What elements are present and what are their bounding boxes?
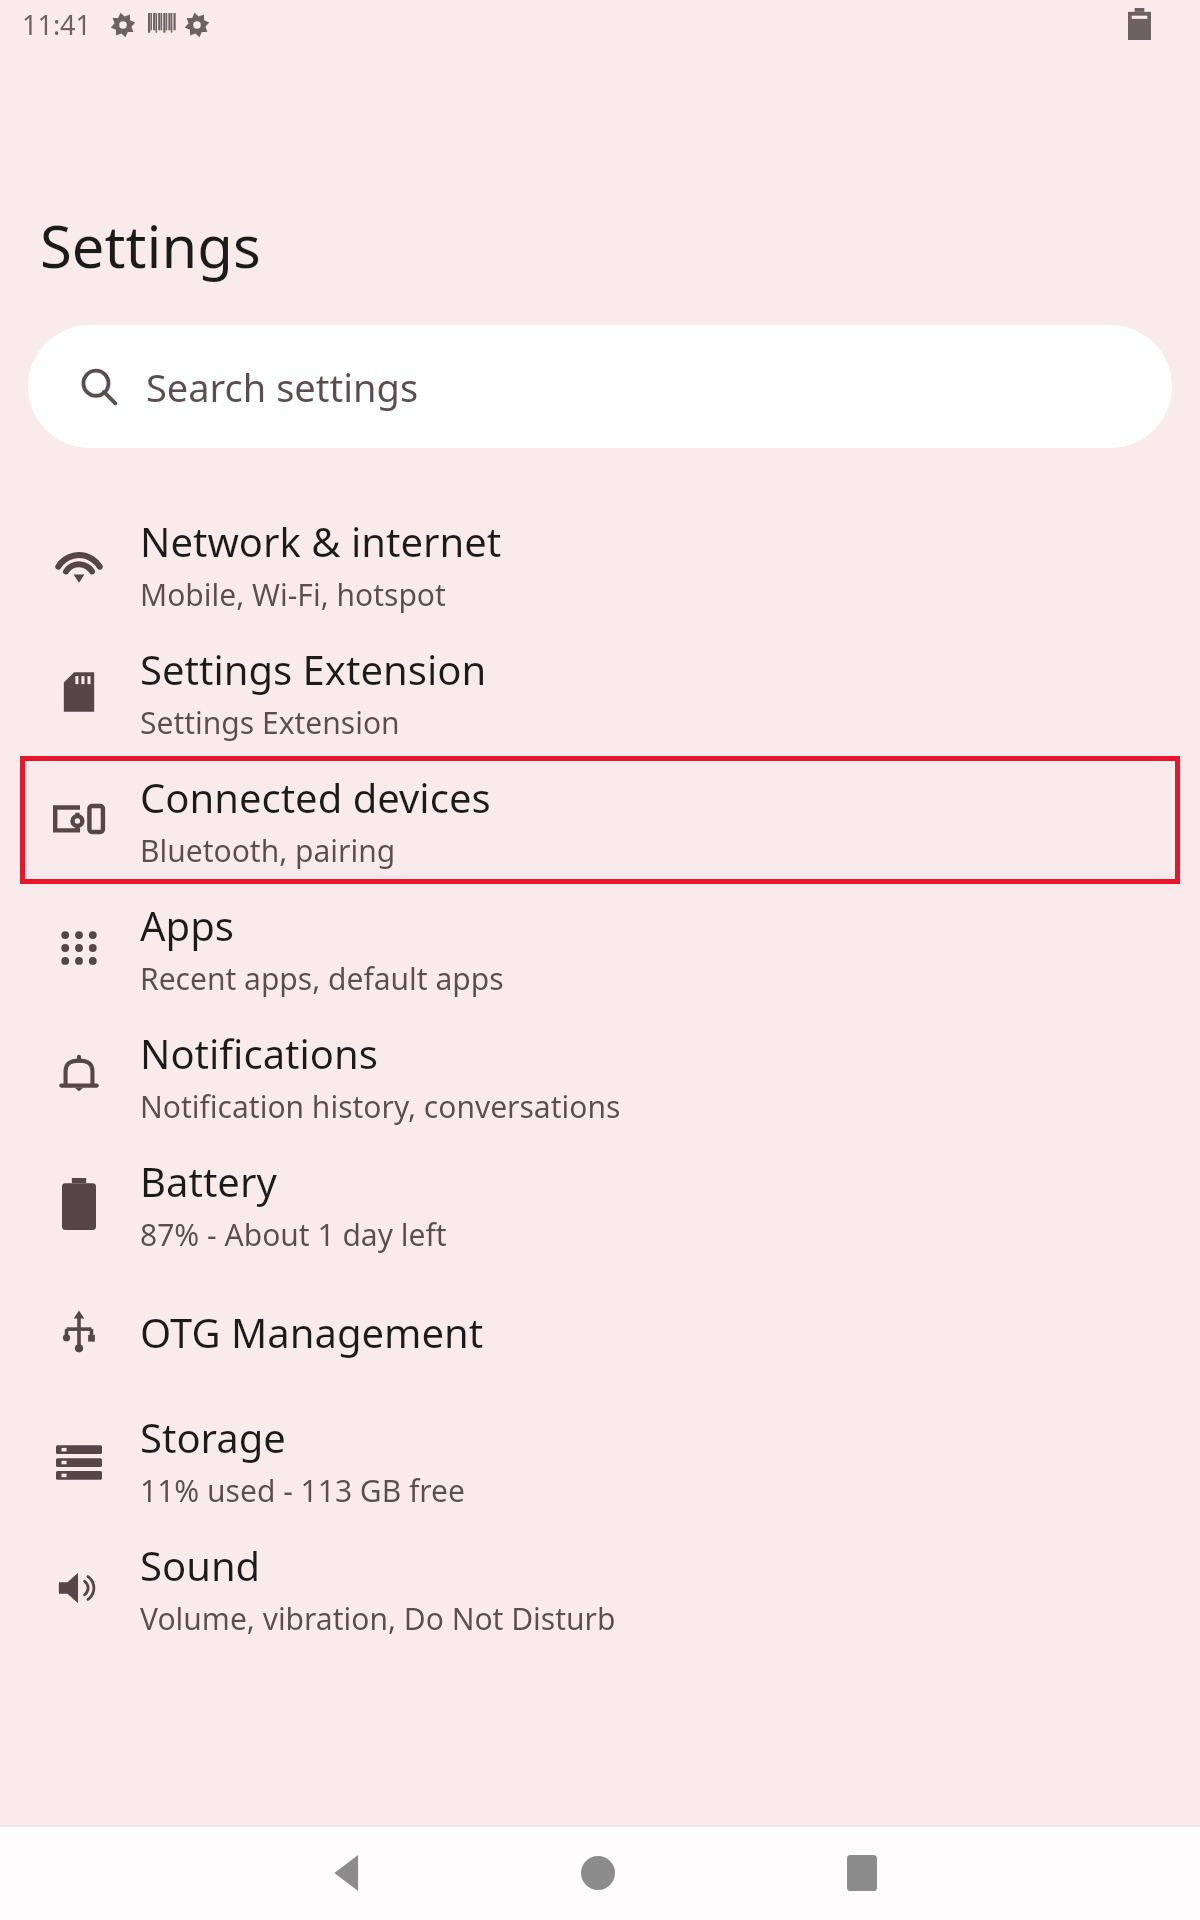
- staticText: Settings Extension: [140, 702, 400, 743]
- staticText: OTG Management: [140, 1305, 484, 1359]
- staticText: Notifications: [140, 1026, 378, 1080]
- staticText: Volume, vibration, Do Not Disturb: [140, 1598, 616, 1639]
- button[interactable]: Notifications: [20, 1012, 1180, 1140]
- staticText: Settings: [40, 206, 261, 285]
- staticText: Apps: [140, 898, 234, 952]
- staticText: Battery: [140, 1154, 277, 1208]
- button[interactable]: Recent apps: [826, 1837, 898, 1909]
- button[interactable]: Apps: [20, 884, 1180, 1012]
- button[interactable]: Sound: [20, 1524, 1180, 1652]
- button[interactable]: Back: [312, 1837, 384, 1909]
- staticText: Connected devices: [140, 770, 491, 824]
- staticText: Search settings: [146, 361, 419, 413]
- button[interactable]: Home: [562, 1837, 634, 1909]
- staticText: 87% - About 1 day left: [140, 1214, 447, 1255]
- staticText: 11:41: [22, 6, 92, 43]
- staticText: 11% used - 113 GB free: [140, 1470, 465, 1511]
- staticText: Settings Extension: [140, 642, 487, 696]
- button[interactable]: Settings Extension: [20, 628, 1180, 756]
- button[interactable]: Search settings: [28, 325, 1172, 448]
- staticText: Network & internet: [140, 514, 502, 568]
- button[interactable]: Network & internet: [20, 500, 1180, 628]
- button[interactable]: OTG Management: [20, 1280, 1180, 1384]
- staticText: Bluetooth, pairing: [140, 830, 396, 871]
- staticText: Recent apps, default apps: [140, 958, 504, 999]
- button[interactable]: Battery: [20, 1140, 1180, 1268]
- button[interactable]: Storage: [20, 1396, 1180, 1524]
- staticText: Notification history, conversations: [140, 1086, 621, 1127]
- button[interactable]: Connected devices: [20, 756, 1180, 884]
- staticText: Sound: [140, 1538, 261, 1592]
- staticText: Storage: [140, 1410, 286, 1464]
- staticText: Mobile, Wi-Fi, hotspot: [140, 574, 446, 615]
